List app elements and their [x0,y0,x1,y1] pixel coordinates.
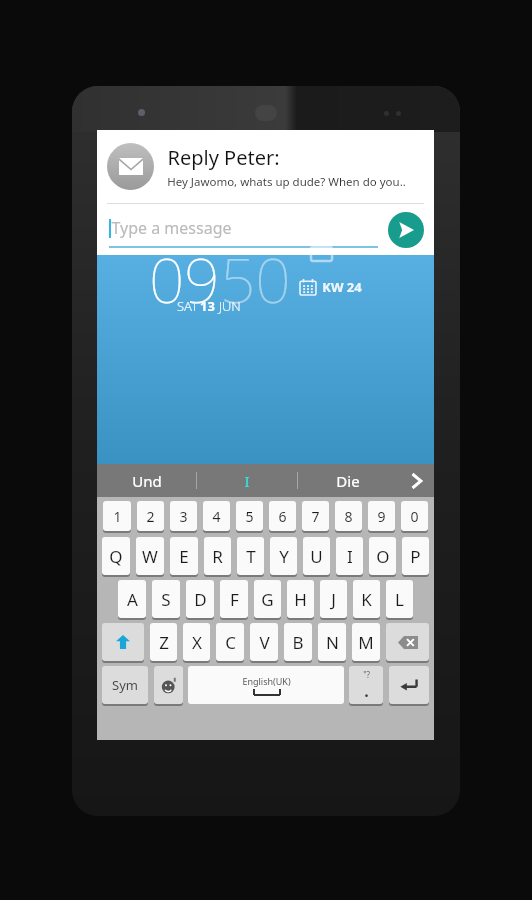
button[interactable]: 3 [170,501,197,531]
staticText: M [358,631,374,654]
staticText: 6 [278,507,287,526]
staticText: 09 [149,237,220,321]
staticText: S [161,588,171,611]
button[interactable]: Und [97,464,196,497]
button[interactable]: V [250,623,278,661]
staticText: Reply Peter: [167,144,280,171]
button[interactable]: 7 [302,501,329,531]
button[interactable]: U [303,537,330,575]
button[interactable]: Backspace [386,623,429,661]
button[interactable]: D [186,580,214,618]
button[interactable]: P [402,537,429,575]
button[interactable]: Reply Peter: [97,130,434,203]
button[interactable]: More suggestions [398,464,434,497]
button[interactable]: O [369,537,396,575]
button[interactable]: B [284,623,312,661]
button[interactable]: Emoji [154,666,183,704]
staticText: I [347,545,353,568]
button[interactable]: H [287,580,314,618]
button[interactable]: 0 [401,501,428,531]
staticText: 8 [344,507,353,526]
staticText: G [261,588,274,611]
button[interactable]: Send [388,212,424,248]
button[interactable]: 9 [368,501,395,531]
button[interactable]: L [386,580,413,618]
staticText: 3 [179,507,188,526]
button[interactable]: X [183,623,210,661]
staticText: 13 [200,297,215,315]
button[interactable]: English(UK) [188,666,344,704]
button[interactable]: Y [270,537,297,575]
button[interactable]: 2 [137,501,164,531]
button[interactable]: E [170,537,198,575]
staticText: . [364,680,369,702]
staticText: O [376,545,390,568]
button[interactable]: 4 [203,501,230,531]
staticText: X [192,631,202,654]
staticText: T [246,545,256,568]
staticText: Y [279,545,289,568]
staticText: N [326,631,339,654]
staticText: English(UK) [242,675,291,687]
staticText: H [294,588,307,611]
button[interactable]: F [220,580,248,618]
staticText: Und [132,471,162,491]
staticText: 50 [220,237,291,321]
staticText: JUN [215,297,241,315]
staticText: Type a message [111,217,232,239]
staticText: 9 [377,507,386,526]
button[interactable]: G [254,580,281,618]
button[interactable]: 5 [236,501,263,531]
button[interactable]: I [336,537,363,575]
button[interactable]: Period [349,666,383,704]
button[interactable]: Type a message [97,204,388,255]
button[interactable]: 6 [269,501,296,531]
staticText: F [230,588,239,611]
staticText: Sym [112,676,138,694]
staticText: 1 [113,507,122,526]
staticText: Z [159,631,169,654]
staticText: C [225,631,236,654]
button[interactable]: W [136,537,164,575]
staticText: I [244,471,250,491]
button[interactable]: 8 [335,501,362,531]
button[interactable]: A [118,580,146,618]
button[interactable]: K [353,580,380,618]
staticText: U [310,545,323,568]
button[interactable]: Q [102,537,130,575]
staticText: 7 [311,507,320,526]
button[interactable]: C [216,623,244,661]
button[interactable]: T [237,537,264,575]
staticText: B [292,631,304,654]
staticText: W [142,545,158,568]
staticText: J [331,588,336,611]
button[interactable]: I [197,464,297,497]
button[interactable]: Z [150,623,177,661]
button[interactable]: R [204,537,231,575]
staticText: Die [336,471,360,491]
staticText: SAT [175,297,200,315]
staticText: 0 [410,507,419,526]
staticText: Q [109,545,123,568]
staticText: 4 [212,507,221,526]
button[interactable]: Sym [102,666,148,704]
staticText: P [410,545,421,568]
button[interactable]: Enter [389,666,429,704]
staticText: A [127,588,138,611]
staticText: V [259,631,270,654]
staticText: KW 24 [322,278,362,296]
staticText: 2 [146,507,155,526]
staticText: 5 [245,507,254,526]
button[interactable]: Shift [102,623,144,661]
button[interactable]: Die [298,464,398,497]
button[interactable]: 1 [103,501,131,531]
staticText: D [194,588,207,611]
button[interactable]: M [352,623,380,661]
button[interactable]: S [152,580,180,618]
staticText: R [212,545,223,568]
button[interactable]: J [320,580,347,618]
staticText: "? [363,669,370,680]
staticText: L [395,588,404,611]
staticText: K [361,588,372,611]
button[interactable]: N [318,623,346,661]
